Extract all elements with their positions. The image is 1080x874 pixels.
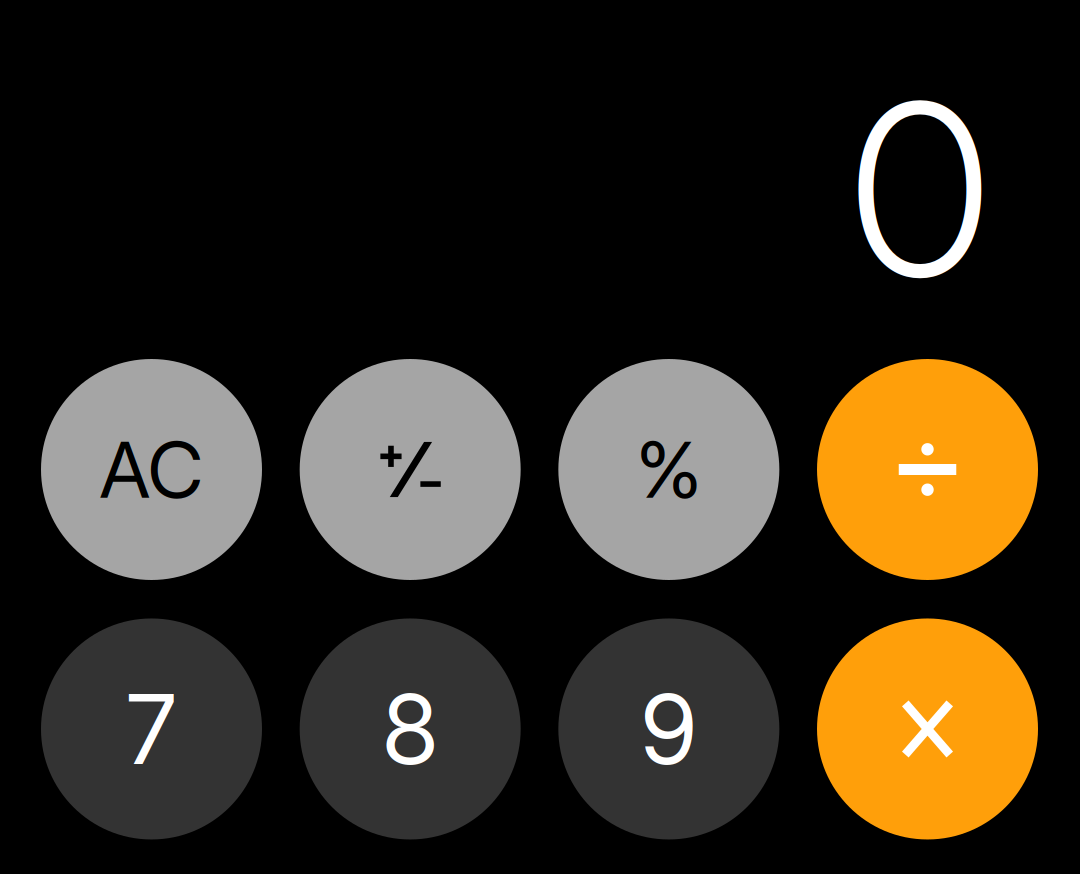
staticText: 9: [641, 671, 697, 787]
staticText: %: [636, 423, 701, 516]
staticText: 8: [382, 671, 438, 787]
button[interactable]: 9: [558, 618, 779, 839]
button[interactable]: %: [558, 359, 779, 580]
staticText: 0: [849, 45, 991, 334]
button[interactable]: Plus Minus: [300, 359, 521, 580]
button[interactable]: AC: [41, 359, 262, 580]
button[interactable]: 8: [300, 618, 521, 839]
staticText: AC: [99, 423, 203, 516]
button[interactable]: Divide: [817, 359, 1038, 580]
button[interactable]: Multiply: [817, 618, 1038, 839]
button[interactable]: 7: [41, 618, 262, 839]
staticText: 7: [126, 671, 176, 787]
